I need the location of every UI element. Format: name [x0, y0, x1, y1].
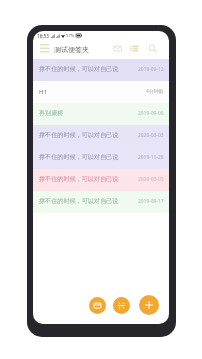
button[interactable]: 撑不住的时候，可以对自己说 — [33, 169, 169, 191]
staticText: 撑不住的时候，可以对自己说 — [39, 197, 138, 205]
button[interactable]: 撑不住的时候，可以对自己说 — [33, 125, 169, 147]
staticText: 2020-03-03 — [138, 132, 164, 139]
staticText: 2019-09-06 — [138, 110, 164, 117]
button[interactable]: Folders — [89, 297, 106, 314]
button[interactable]: Sort — [113, 297, 130, 314]
staticText: 4分钟前 — [146, 88, 164, 95]
staticText: 57% — [66, 33, 75, 39]
staticText: H1 — [39, 87, 146, 95]
button[interactable]: Menu — [37, 41, 51, 55]
button[interactable]: 撑不住的时候，可以对自己说 — [33, 59, 169, 81]
button[interactable]: Categories — [127, 41, 141, 55]
button[interactable]: H1 — [33, 81, 169, 103]
staticText: 测试便签夹 — [54, 45, 89, 54]
staticText: 撑不住的时候，可以对自己说 — [39, 65, 138, 73]
button[interactable]: 撑不住的时候，可以对自己说 — [33, 191, 169, 213]
staticText: 2020-03-03 — [138, 176, 164, 183]
staticText: 2019-08-17 — [138, 198, 164, 205]
staticText: 撑不住的时候，可以对自己说 — [39, 153, 138, 161]
staticText: 2019-09-12 — [138, 66, 164, 73]
button[interactable]: Add note — [139, 295, 159, 315]
staticText: 再别康桥 — [39, 109, 138, 117]
button[interactable]: 再别康桥 — [33, 103, 169, 125]
button[interactable]: Search — [145, 41, 159, 55]
staticText: 撑不住的时候，可以对自己说 — [39, 175, 138, 183]
button[interactable]: Mail — [110, 41, 124, 55]
button[interactable]: 撑不住的时候，可以对自己说 — [33, 147, 169, 169]
staticText: 撑不住的时候，可以对自己说 — [39, 131, 138, 139]
staticText: 16:53 — [37, 33, 49, 39]
staticText: 2019-11-28 — [138, 154, 164, 161]
